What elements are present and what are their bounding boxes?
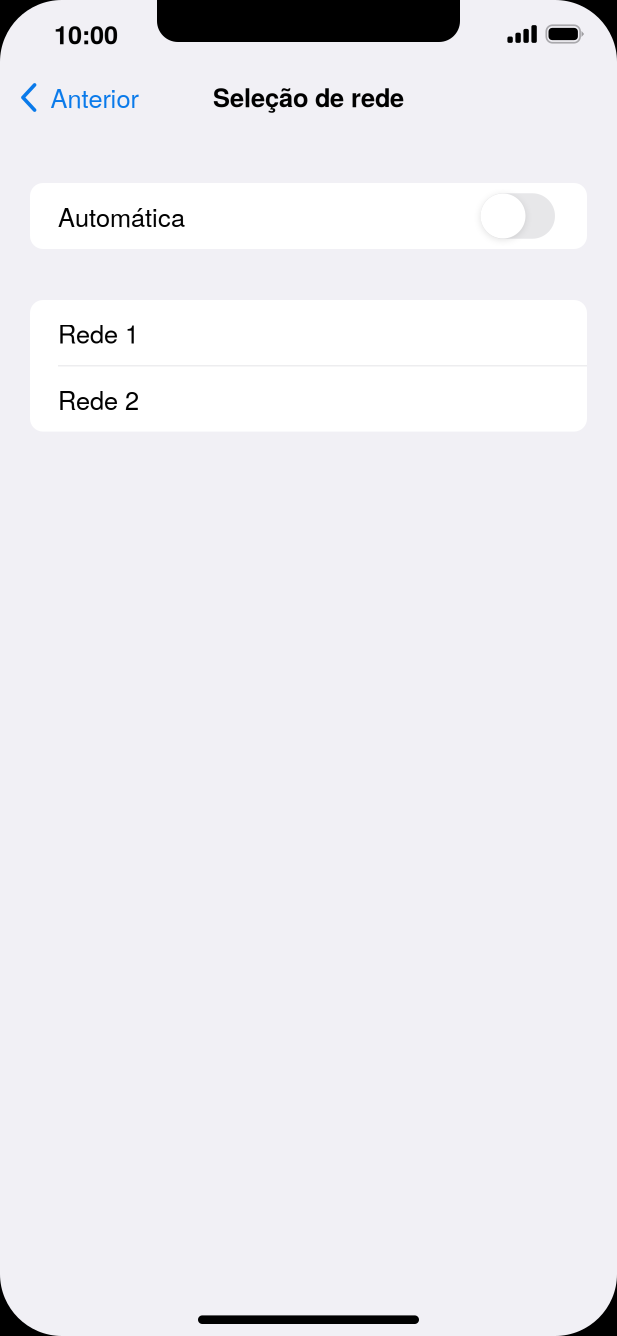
staticText: 10:00 [54,16,118,52]
button[interactable]: Rede 1 [30,300,587,365]
button[interactable]: Automática [30,183,587,249]
button[interactable]: Anterior [0,69,154,125]
staticText: Seleção de rede [213,79,404,115]
button[interactable]: Rede 2 [30,366,587,432]
staticText: Rede 2 [58,381,139,417]
staticText: Rede 1 [58,314,139,351]
staticText: Automática [58,198,185,234]
staticText: Anterior [50,79,138,115]
